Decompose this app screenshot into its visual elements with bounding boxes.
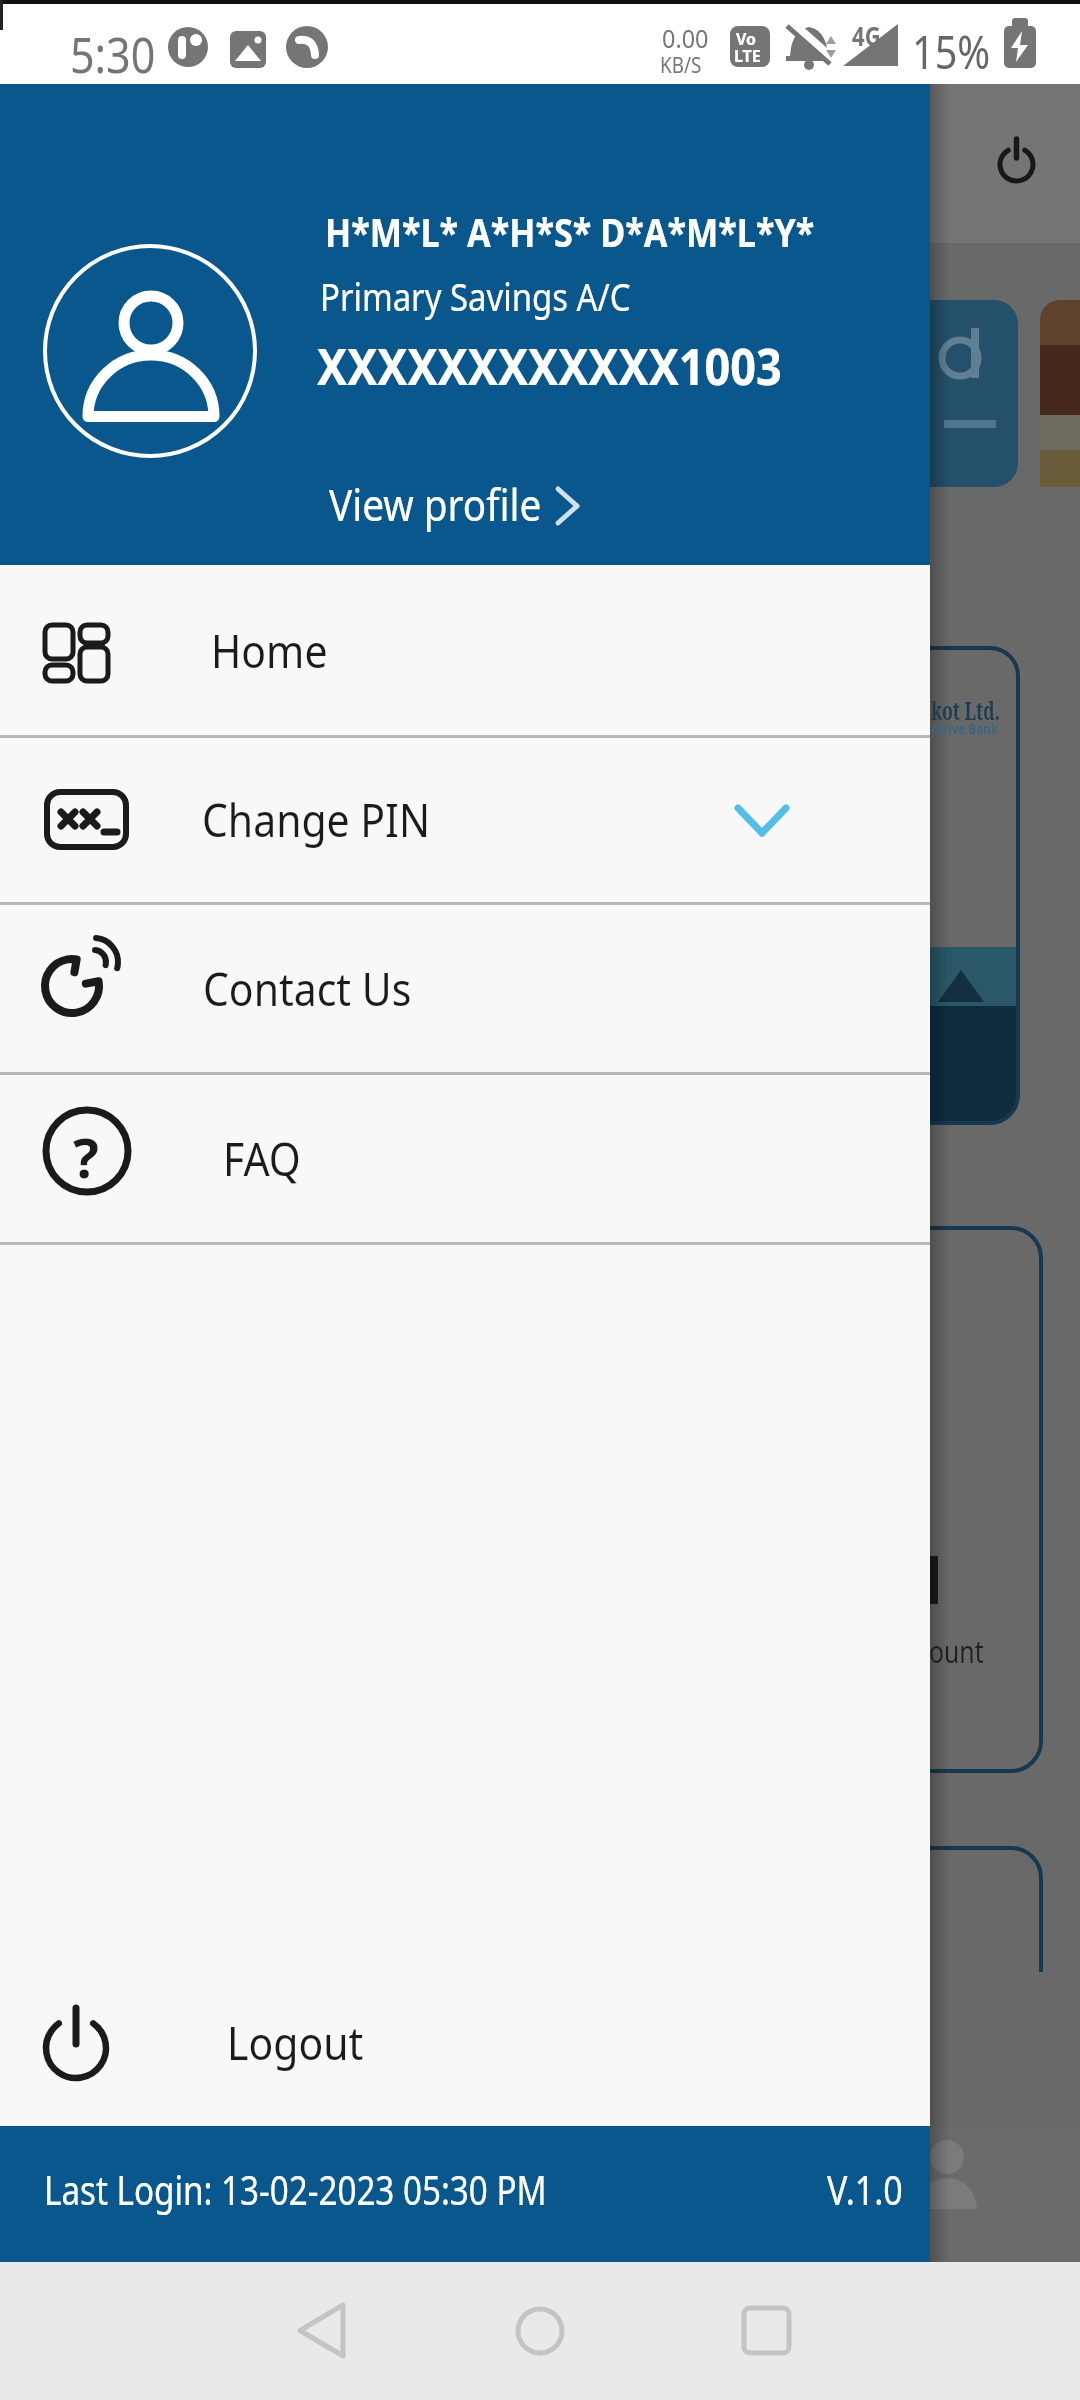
staticText: Change PIN <box>202 788 431 851</box>
button[interactable]: Home <box>0 565 930 735</box>
staticText: H*M*L* A*H*S* D*A*M*L*Y* <box>325 204 815 258</box>
staticText: kot Ltd. <box>931 692 1000 727</box>
button[interactable]: H*M*L* A*H*S* D*A*M*L*Y* <box>0 84 930 565</box>
staticText: Contact Us <box>203 957 412 1020</box>
staticText: 0.00 <box>662 20 709 55</box>
staticText: FAQ <box>223 1127 301 1190</box>
staticText: Vo <box>736 28 757 50</box>
staticText: View profile <box>329 474 542 534</box>
staticText: 4G <box>852 18 881 53</box>
staticText: Logout <box>227 2011 364 2074</box>
staticText: Home <box>211 619 328 682</box>
staticText: 15% <box>912 20 990 83</box>
button[interactable]: Contact Us <box>0 904 930 1072</box>
staticText: ? <box>73 1120 99 1194</box>
button[interactable]: Logout <box>0 1959 930 2126</box>
staticText: KB/S <box>660 51 701 80</box>
staticText: LTE <box>734 45 761 67</box>
staticText: 5:30 <box>70 20 156 88</box>
staticText: V.1.0 <box>827 2162 903 2216</box>
staticText: rative Bank <box>931 719 999 738</box>
staticText: Last Login: 13-02-2023 05:30 PM <box>44 2162 547 2216</box>
staticText: XXXXXXXXXXXX1003 <box>317 332 782 400</box>
staticText: ount <box>929 1630 984 1672</box>
button[interactable]: Change PIN <box>0 737 930 902</box>
button[interactable]: FAQ <box>0 1074 930 1242</box>
staticText: Primary Savings A/C <box>320 270 630 322</box>
